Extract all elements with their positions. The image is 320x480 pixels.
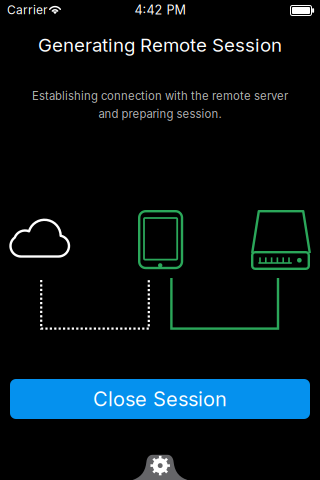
button[interactable]: Settings — [0, 0, 320, 480]
staticText: Generating Remote Session — [38, 34, 282, 56]
button[interactable]: Close Session — [10, 379, 310, 419]
staticText: 4:42 PM — [134, 2, 185, 18]
staticText: Close Session — [93, 387, 227, 411]
staticText: Carrier — [7, 3, 48, 17]
staticText: Establishing connection with the remote … — [32, 89, 288, 103]
staticText: and preparing session. — [98, 107, 221, 121]
